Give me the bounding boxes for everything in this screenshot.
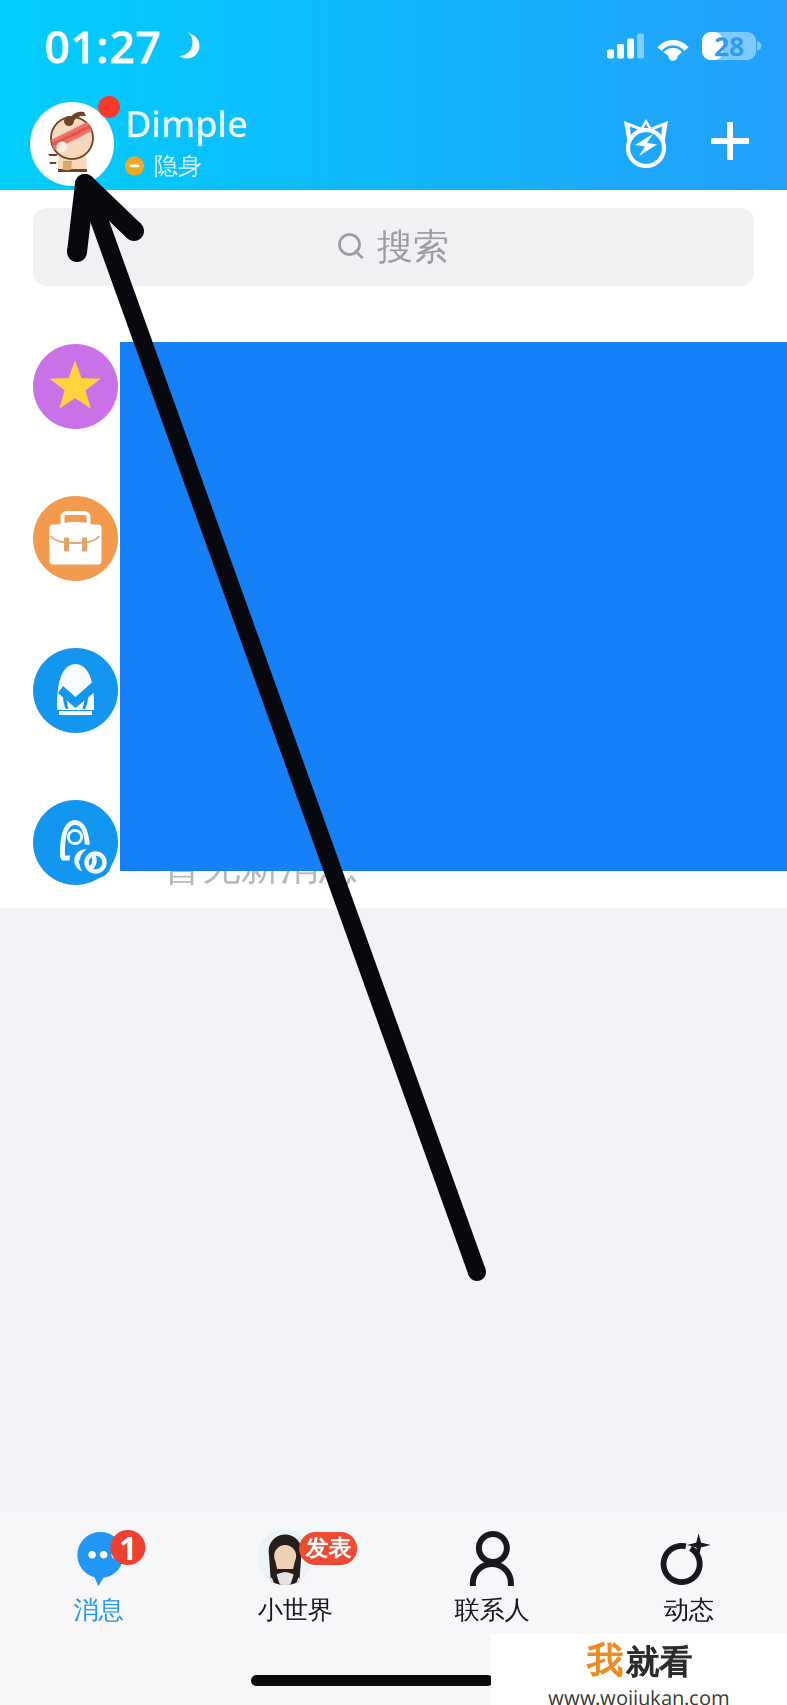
staticText: 我	[586, 1639, 622, 1683]
button[interactable]: 头像	[30, 96, 120, 186]
staticText: 1	[119, 1526, 137, 1569]
staticText: 小世界	[258, 1594, 333, 1625]
staticText: 联系人	[454, 1594, 529, 1625]
staticText: www.wojiukan.com	[548, 1684, 730, 1705]
staticText: 发表	[305, 1535, 351, 1562]
button[interactable]: 1	[0, 1512, 197, 1662]
button[interactable]: QQ团队	[33, 648, 118, 733]
button[interactable]: 发表	[197, 1512, 394, 1662]
button[interactable]: 工作	[33, 496, 118, 581]
staticText: 28	[714, 28, 744, 64]
staticText: 暂无新消息	[163, 843, 358, 890]
staticText: 消息	[73, 1594, 123, 1625]
button[interactable]: 搜索	[33, 208, 754, 286]
button[interactable]: 添加	[702, 113, 758, 169]
staticText: Dimple	[125, 99, 248, 147]
button[interactable]: 联系人	[393, 1512, 590, 1662]
staticText: 01:27	[44, 16, 161, 76]
button[interactable]: 小世界	[620, 115, 672, 167]
button[interactable]: QQ小程序	[33, 800, 118, 885]
staticText: 动态	[664, 1594, 714, 1625]
button[interactable]: 动态	[590, 1512, 787, 1662]
staticText: 搜索	[377, 225, 449, 269]
staticText: 就看	[625, 1642, 691, 1683]
staticText: 隐身	[154, 151, 202, 181]
button[interactable]: 星标	[33, 344, 118, 429]
